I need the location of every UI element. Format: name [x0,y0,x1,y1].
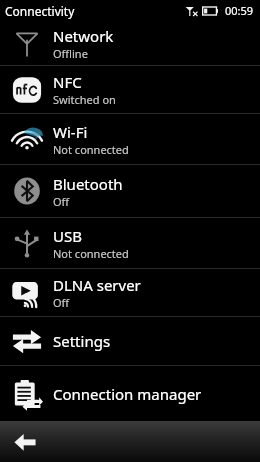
staticText: Wi-Fi [53,122,88,142]
staticText: Settings [53,331,111,351]
staticText: Off [53,194,70,209]
staticText: Bluetooth [53,174,123,194]
button[interactable]: Settings [0,317,260,365]
staticText: Not connected [53,246,129,261]
button[interactable]: USB [0,218,260,268]
staticText: DLNA server [53,275,141,295]
staticText: 00:59 [225,3,254,18]
staticText: Network [53,26,114,46]
staticText: Not connected [53,142,129,157]
staticText: Off [53,295,70,310]
staticText: Connection manager [53,384,202,404]
button[interactable]: Wi-Fi [0,114,260,164]
staticText: NFC [53,72,82,92]
button[interactable]: Network [0,21,260,65]
button[interactable]: NFC [0,66,260,113]
button[interactable]: Connection manager [0,366,260,421]
button[interactable]: Back [7,424,43,460]
staticText: Switched on [53,92,116,107]
button[interactable]: DLNA server [0,269,260,316]
staticText: Offline [53,46,88,61]
staticText: USB [53,226,82,246]
button[interactable]: Bluetooth [0,165,260,217]
staticText: Connectivity [5,3,75,19]
